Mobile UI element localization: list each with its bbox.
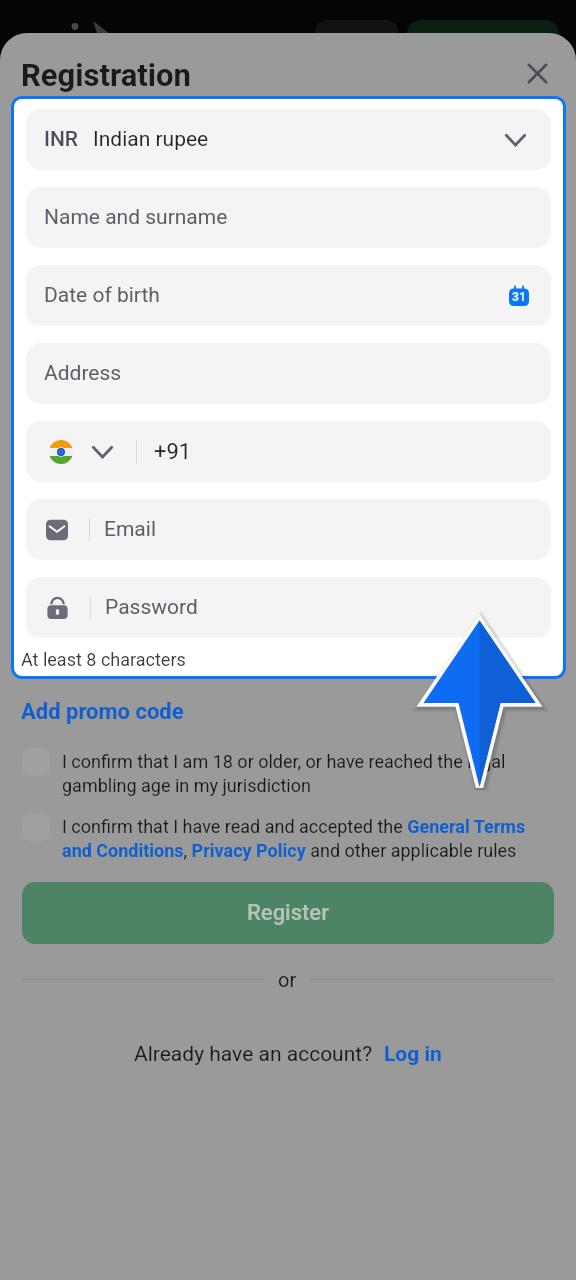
staticText: INR	[44, 127, 79, 152]
staticText: Registration	[21, 57, 191, 93]
button[interactable]: Close	[519, 55, 555, 91]
staticText: or	[278, 968, 297, 991]
staticText: I confirm that I am 18 or older, or have…	[62, 751, 558, 796]
button[interactable]: Address	[26, 343, 551, 404]
button[interactable]: Password	[26, 577, 551, 638]
button[interactable]: I confirm that I have read and accepted …	[0, 816, 576, 861]
staticText: Register	[247, 900, 329, 926]
button[interactable]: Date of birth	[26, 265, 551, 326]
button[interactable]: Log in	[373, 1042, 442, 1067]
staticText: Already have an account?	[134, 1042, 373, 1067]
staticText: Add promo code	[21, 699, 184, 725]
button[interactable]: I confirm that I am 18 or older, or have…	[0, 751, 576, 796]
staticText: +91	[154, 439, 192, 465]
staticText: At least 8 characters	[21, 649, 186, 670]
button[interactable]: +91	[26, 421, 551, 482]
staticText: Address	[44, 361, 122, 386]
staticText: Name and surname	[44, 205, 228, 230]
button[interactable]: Email	[26, 499, 551, 560]
button[interactable]: Name and surname	[26, 187, 551, 248]
staticText: Log in	[384, 1042, 442, 1067]
staticText: 31	[512, 290, 526, 304]
button[interactable]: Register	[22, 882, 554, 944]
staticText: Password	[105, 595, 198, 620]
staticText: Date of birth	[44, 283, 160, 308]
button[interactable]: INR	[26, 109, 551, 170]
staticText: Email	[104, 517, 156, 542]
button[interactable]: Add promo code	[0, 697, 206, 727]
staticText: I confirm that I have read and accepted …	[62, 816, 558, 861]
staticText: Indian rupee	[93, 127, 209, 152]
